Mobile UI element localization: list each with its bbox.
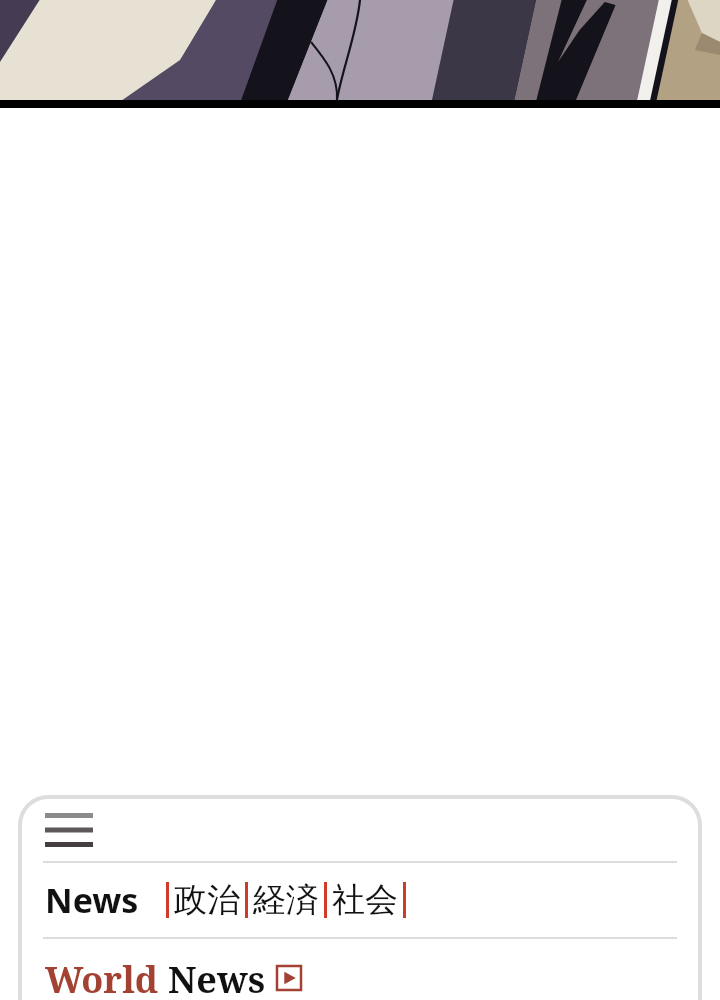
staticText: News bbox=[45, 877, 139, 923]
staticText: News bbox=[168, 955, 266, 1000]
button[interactable]: World bbox=[45, 955, 698, 1000]
button[interactable]: Menu bbox=[22, 799, 698, 861]
staticText: 社会 bbox=[332, 879, 398, 921]
staticText: 政治 bbox=[174, 879, 240, 921]
button[interactable]: 経済 bbox=[253, 879, 319, 921]
button[interactable]: News bbox=[45, 877, 139, 923]
button[interactable]: Play bbox=[276, 965, 302, 991]
staticText: World bbox=[45, 955, 159, 1000]
button[interactable]: 政治 bbox=[174, 879, 240, 921]
button[interactable]: 社会 bbox=[332, 879, 398, 921]
staticText: 経済 bbox=[253, 879, 319, 921]
